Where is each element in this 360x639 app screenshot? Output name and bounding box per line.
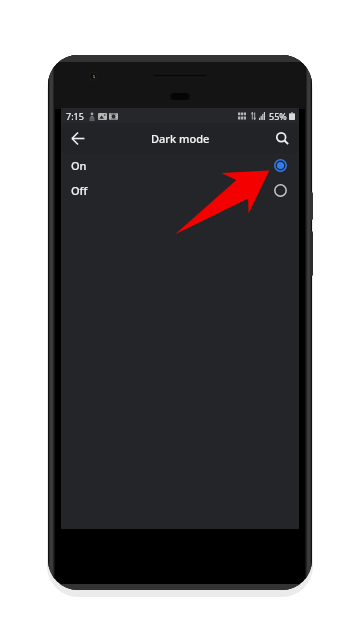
staticText: On: [71, 158, 87, 173]
staticText: Dark mode: [151, 131, 210, 146]
staticText: 7:15: [66, 110, 84, 122]
button[interactable]: Back: [63, 123, 93, 153]
button[interactable]: On: [61, 153, 299, 178]
button[interactable]: Off: [61, 178, 299, 203]
button[interactable]: Search: [267, 123, 297, 153]
staticText: Off: [71, 183, 88, 198]
staticText: 55%: [269, 110, 287, 122]
